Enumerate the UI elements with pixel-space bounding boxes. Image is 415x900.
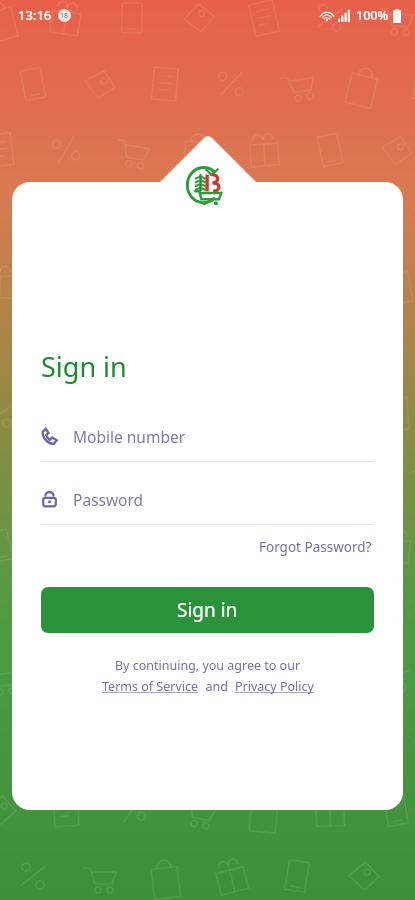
staticText: and <box>199 678 235 695</box>
button[interactable]: Privacy Policy <box>235 678 314 695</box>
other: Password <box>41 491 58 508</box>
staticText: 100% <box>356 7 389 24</box>
staticText: By continuing, you agree to our <box>12 657 403 674</box>
staticText: 18 <box>60 11 69 21</box>
button[interactable]: Password <box>12 484 403 525</box>
staticText: Terms of Service <box>102 678 199 695</box>
button[interactable]: Forgot Password? <box>257 535 374 559</box>
staticText: Password <box>73 489 144 510</box>
staticText: Mobile number <box>73 426 186 447</box>
button[interactable]: Sign in <box>41 587 374 633</box>
staticText: Sign in <box>41 348 127 385</box>
staticText: Sign in <box>177 597 238 623</box>
staticText: Privacy Policy <box>235 678 314 695</box>
staticText: Forgot Password? <box>259 538 372 556</box>
button[interactable]: Mobile number <box>12 421 403 462</box>
other: App logo <box>155 133 260 238</box>
staticText: 13:16 <box>18 6 52 24</box>
other: Mobile number <box>41 428 58 445</box>
button[interactable]: Terms of Service <box>102 678 199 695</box>
